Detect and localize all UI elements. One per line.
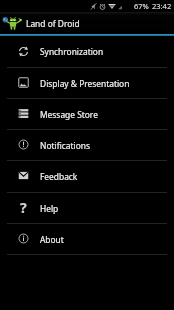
button[interactable]: ?	[0, 193, 174, 223]
staticText: 23:42	[152, 1, 172, 11]
button[interactable]: Display & Presentation	[0, 68, 174, 98]
button[interactable]: About	[0, 224, 174, 254]
staticText: Feedback	[40, 171, 78, 182]
staticText: About	[40, 234, 64, 245]
staticText: Land of Droid	[26, 18, 80, 29]
button[interactable]: Message Store	[0, 99, 174, 129]
staticText: Synchronization	[40, 46, 104, 57]
button[interactable]: Land of Droid	[0, 12, 174, 34]
button[interactable]: Notifications	[0, 130, 174, 160]
staticText: ?	[20, 198, 27, 217]
staticText: Help	[40, 203, 59, 214]
staticText: Notifications	[40, 140, 90, 151]
staticText: Display & Presentation	[40, 78, 130, 89]
button[interactable]: Feedback	[0, 161, 174, 191]
button[interactable]: Synchronization	[0, 36, 174, 67]
staticText: Message Store	[40, 109, 98, 120]
staticText: 67%	[134, 1, 149, 11]
